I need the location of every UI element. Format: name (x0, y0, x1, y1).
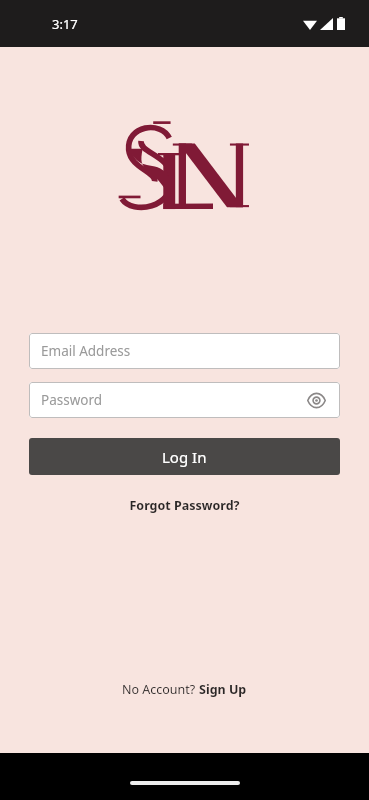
button[interactable]: Log In (29, 438, 340, 475)
button[interactable]: Email Address (29, 333, 340, 369)
staticText: No Account? (122, 681, 199, 698)
button[interactable]: No Account? (114, 677, 255, 702)
staticText: Password (41, 391, 103, 409)
staticText: 3:17 (52, 15, 78, 33)
staticText: Log In (162, 447, 207, 467)
staticText: Forgot Password? (129, 497, 240, 514)
button[interactable]: Forgot Password? (29, 493, 340, 518)
button[interactable]: Password (29, 382, 340, 418)
staticText: Sign Up (199, 681, 247, 698)
button[interactable]: Show password (304, 388, 328, 412)
staticText: Email Address (41, 342, 131, 360)
